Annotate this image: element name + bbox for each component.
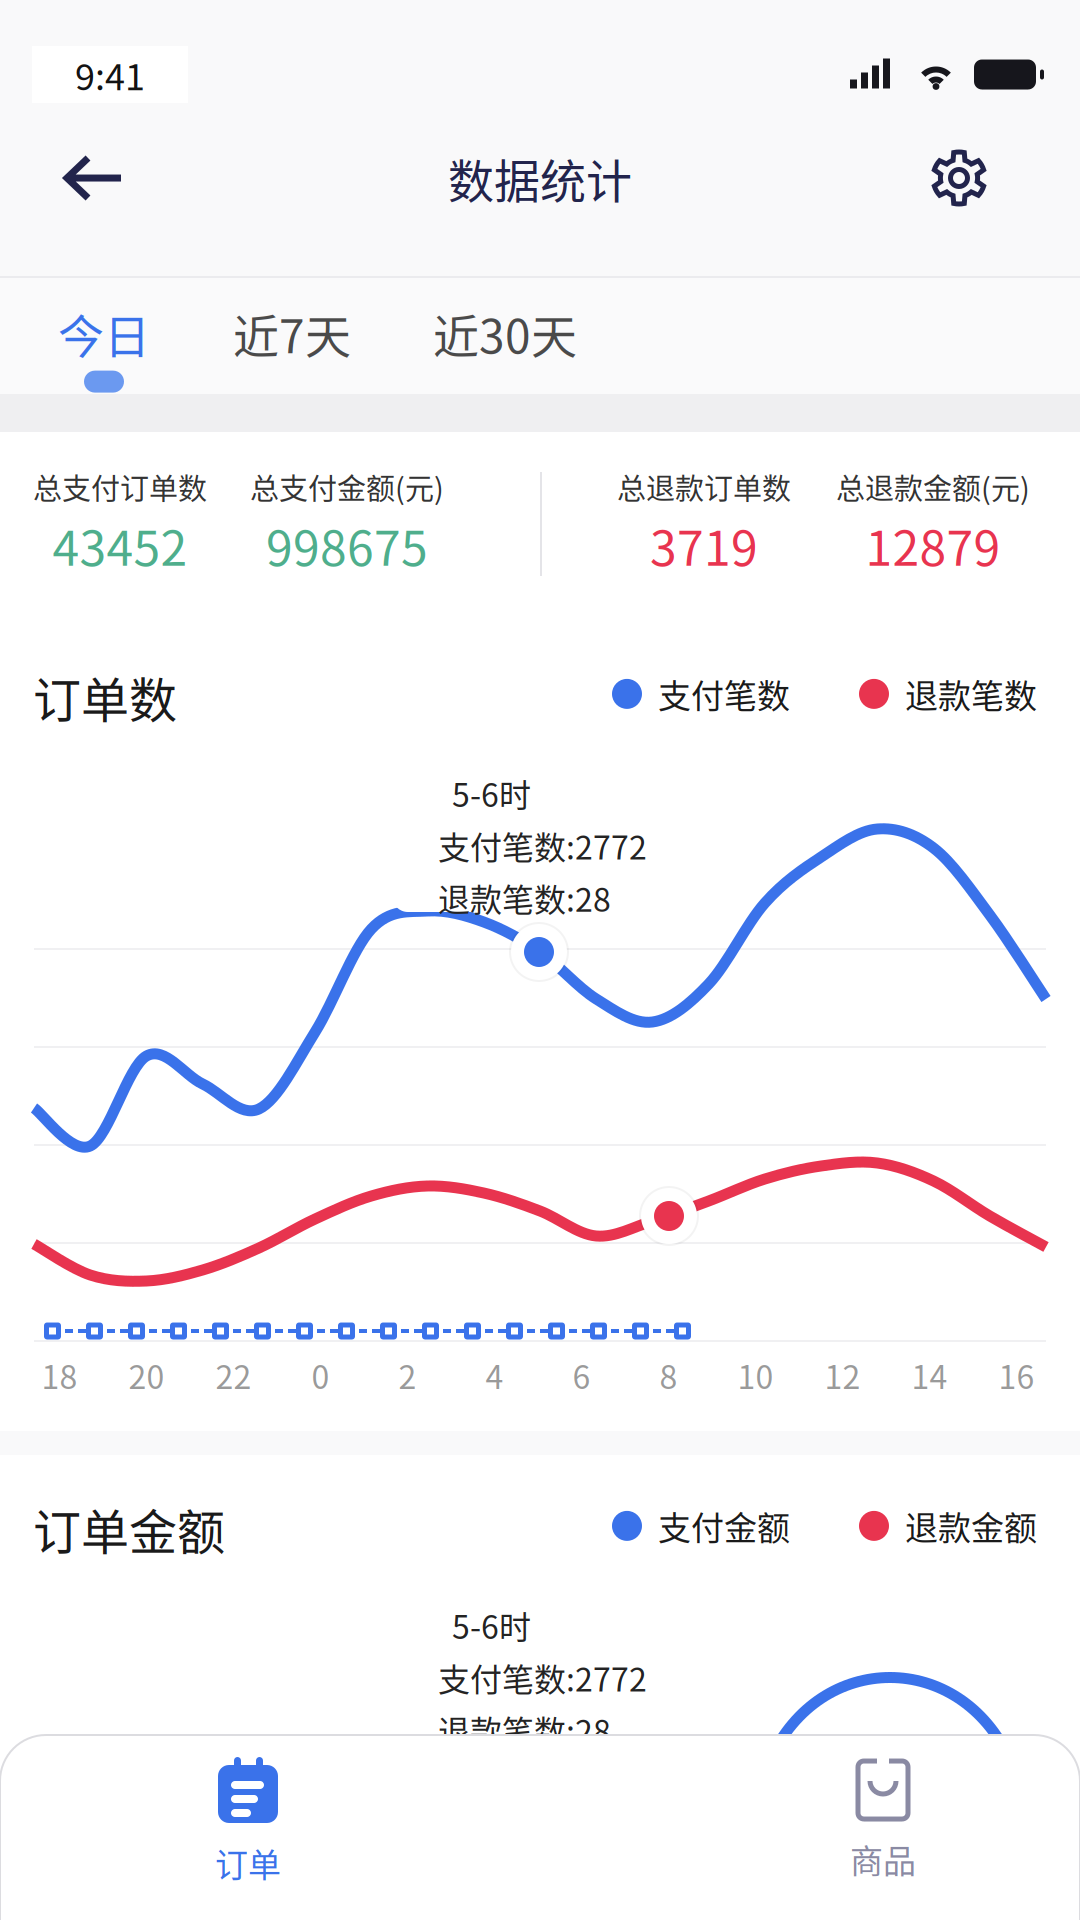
button[interactable]: Settings bbox=[903, 122, 1015, 234]
staticText: 4 bbox=[485, 1352, 503, 1398]
staticText: 43452 bbox=[52, 510, 187, 579]
staticText: 5-6时 bbox=[452, 1602, 531, 1648]
staticText: 订单 bbox=[215, 1839, 281, 1887]
staticText: 总支付金额(元) bbox=[250, 466, 444, 508]
staticText: 退款金额 bbox=[905, 1502, 1037, 1550]
staticText: 10 bbox=[737, 1352, 773, 1398]
staticText: 总退款订单数 bbox=[617, 466, 791, 508]
staticText: 数据统计 bbox=[448, 145, 632, 211]
staticText: 总支付订单数 bbox=[33, 466, 207, 508]
button[interactable]: 今日 bbox=[16, 300, 192, 412]
staticText: 2 bbox=[398, 1352, 416, 1398]
staticText: 22 bbox=[215, 1352, 251, 1398]
staticText: 近30天 bbox=[433, 300, 577, 367]
button[interactable]: 近30天 bbox=[392, 300, 618, 412]
button[interactable]: 近7天 bbox=[192, 300, 392, 412]
staticText: 退款笔数 bbox=[905, 670, 1037, 718]
staticText: 18 bbox=[41, 1352, 77, 1398]
staticText: 12879 bbox=[865, 510, 1000, 579]
staticText: 14 bbox=[911, 1352, 947, 1398]
staticText: 998675 bbox=[266, 510, 428, 579]
staticText: 支付笔数 bbox=[658, 670, 790, 718]
button[interactable]: Back bbox=[38, 122, 150, 234]
staticText: 3719 bbox=[650, 510, 758, 579]
button[interactable]: 订单 bbox=[124, 1757, 372, 1920]
staticText: 9:41 bbox=[75, 48, 145, 100]
staticText: 20 bbox=[128, 1352, 164, 1398]
staticText: 订单金额 bbox=[33, 1494, 225, 1563]
staticText: 商品 bbox=[850, 1835, 916, 1883]
staticText: 退款笔数:28 bbox=[438, 1707, 611, 1753]
staticText: 退款笔数:28 bbox=[438, 875, 611, 921]
staticText: 订单数 bbox=[33, 662, 177, 731]
staticText: 支付金额 bbox=[658, 1502, 790, 1550]
button[interactable]: 商品 bbox=[759, 1757, 1007, 1920]
staticText: 支付笔数:2772 bbox=[438, 1654, 647, 1701]
staticText: 总退款金额(元) bbox=[836, 466, 1030, 508]
staticText: 12 bbox=[824, 1352, 860, 1398]
staticText: 0 bbox=[311, 1352, 329, 1398]
staticText: 16 bbox=[998, 1352, 1034, 1398]
staticText: 支付笔数:2772 bbox=[438, 822, 647, 869]
staticText: 6 bbox=[572, 1352, 590, 1398]
staticText: 5-6时 bbox=[452, 770, 531, 816]
staticText: 今日 bbox=[58, 300, 150, 367]
staticText: 8 bbox=[659, 1352, 677, 1398]
staticText: 近7天 bbox=[233, 300, 351, 367]
